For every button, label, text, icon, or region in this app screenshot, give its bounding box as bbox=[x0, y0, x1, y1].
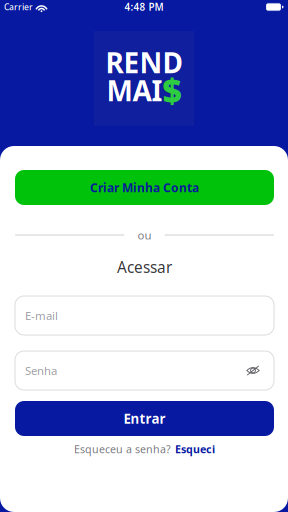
staticText: Acessar bbox=[117, 257, 172, 277]
staticText: Entrar bbox=[123, 410, 165, 427]
button[interactable]: Entrar bbox=[15, 401, 274, 436]
staticText: E-mail bbox=[25, 308, 58, 323]
staticText: Carrier bbox=[4, 1, 33, 13]
staticText: $ bbox=[162, 68, 181, 113]
staticText: 4:48 PM bbox=[124, 0, 163, 14]
staticText: ou bbox=[137, 227, 151, 243]
staticText: Esqueci bbox=[175, 442, 215, 456]
staticText: Criar Minha Conta bbox=[90, 179, 199, 195]
button[interactable]: Esqueceu a senha? bbox=[15, 436, 274, 462]
staticText: MAI bbox=[106, 72, 162, 109]
button[interactable]: Mostrar senha bbox=[242, 359, 264, 381]
staticText: Senha bbox=[25, 363, 57, 378]
staticText: REND bbox=[105, 44, 182, 81]
button[interactable]: Criar Minha Conta bbox=[15, 170, 274, 205]
staticText: Esqueceu a senha? bbox=[74, 442, 171, 456]
